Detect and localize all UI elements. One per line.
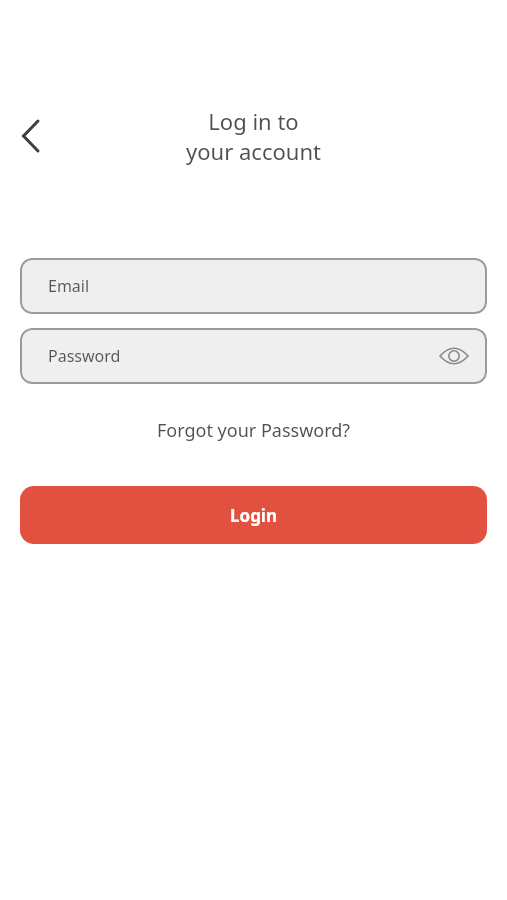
button[interactable] (439, 346, 469, 366)
staticText: Login (230, 504, 278, 527)
button[interactable]: Login (20, 486, 487, 544)
button[interactable]: Email (20, 258, 487, 314)
staticText: Email (48, 275, 90, 297)
staticText: Password (48, 345, 121, 367)
button[interactable]: Password (20, 328, 487, 384)
staticText: Log in to your account (0, 106, 507, 166)
button[interactable]: Forgot your Password? (157, 418, 351, 443)
button[interactable] (10, 116, 50, 156)
